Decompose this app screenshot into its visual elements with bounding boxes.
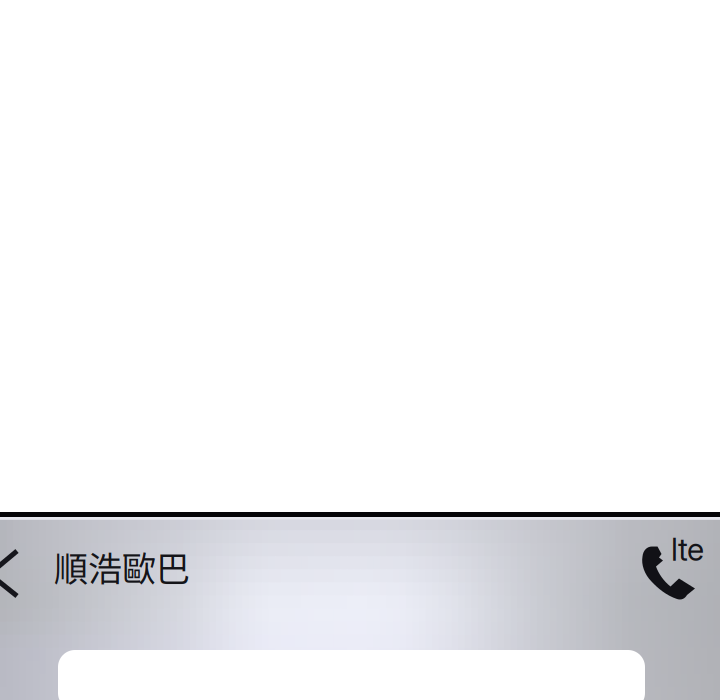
button[interactable]: Call bbox=[634, 531, 720, 601]
staticText: lte bbox=[671, 531, 704, 568]
staticText: 順浩歐巴 bbox=[54, 542, 190, 591]
button[interactable]: Back bbox=[0, 543, 35, 603]
